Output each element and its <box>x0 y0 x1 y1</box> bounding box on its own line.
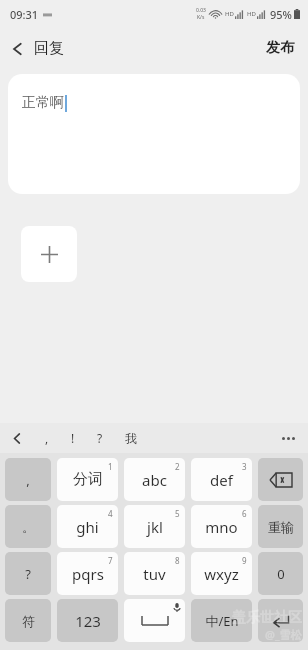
staticText: ? <box>97 430 103 446</box>
button[interactable]: 123 <box>57 599 118 642</box>
button[interactable]: 0 <box>258 552 303 595</box>
button[interactable]: Enter <box>258 599 303 642</box>
button[interactable]: 我 <box>114 426 148 451</box>
staticText: 回复 <box>34 39 64 58</box>
staticText: 8 <box>175 555 180 566</box>
button[interactable]: ? <box>5 552 51 595</box>
button[interactable]: 符 <box>5 599 51 642</box>
button[interactable]: More <box>269 429 308 448</box>
staticText: 1 <box>108 461 113 472</box>
staticText: 正常啊 <box>22 94 64 112</box>
staticText: 3 <box>242 461 247 472</box>
button[interactable]: Back <box>0 33 74 64</box>
staticText: K/s <box>197 14 205 21</box>
staticText: pqrs <box>72 564 104 584</box>
staticText: 中/En <box>205 612 239 630</box>
button[interactable]: jkl <box>124 505 185 548</box>
button[interactable]: def <box>191 458 252 501</box>
staticText: 0 <box>277 565 285 583</box>
staticText: , <box>26 471 30 489</box>
staticText: 符 <box>22 613 35 629</box>
button[interactable]: mno <box>191 505 252 548</box>
staticText: ! <box>71 430 75 446</box>
staticText: 6 <box>242 508 247 519</box>
staticText: 我 <box>125 431 137 446</box>
staticText: 发布 <box>266 39 294 57</box>
staticText: 09:31 <box>10 7 39 22</box>
staticText: 盖乐世社区 <box>232 609 302 627</box>
staticText: 95% <box>270 7 292 22</box>
staticText: def <box>210 470 233 490</box>
staticText: mno <box>205 517 238 537</box>
button[interactable]: tuv <box>124 552 185 595</box>
staticText: tuv <box>143 564 166 584</box>
button[interactable]: Collapse <box>0 426 34 451</box>
button[interactable]: wxyz <box>191 552 252 595</box>
staticText: HD <box>247 10 256 18</box>
staticText: abc <box>142 470 167 490</box>
staticText: 7 <box>108 555 113 566</box>
staticText: jkl <box>147 517 163 537</box>
staticText: 0.03 <box>196 7 206 14</box>
staticText: ghi <box>76 517 99 537</box>
button[interactable]: pqrs <box>57 552 118 595</box>
staticText: @_雪松 <box>265 627 302 642</box>
button[interactable]: 中/En <box>191 599 252 642</box>
staticText: 123 <box>75 611 101 631</box>
staticText: wxyz <box>204 564 239 584</box>
button[interactable]: Backspace <box>258 458 303 501</box>
button[interactable]: ghi <box>57 505 118 548</box>
staticText: 2 <box>175 461 180 472</box>
button[interactable]: abc <box>124 458 185 501</box>
button[interactable]: 分词 <box>57 458 118 501</box>
button[interactable]: Add image <box>21 226 77 282</box>
button[interactable]: ? <box>86 425 114 451</box>
button[interactable]: , <box>34 425 60 451</box>
button[interactable]: 发布 <box>252 31 308 65</box>
staticText: 分词 <box>73 470 103 489</box>
staticText: , <box>45 430 49 446</box>
staticText: 4 <box>108 508 113 519</box>
button[interactable]: 。 <box>5 505 51 548</box>
staticText: 9 <box>242 555 247 566</box>
button[interactable]: ! <box>60 425 86 451</box>
other: Back <box>12 41 23 57</box>
staticText: 重输 <box>268 519 294 535</box>
staticText: ? <box>25 565 31 583</box>
staticText: 。 <box>22 519 35 535</box>
button[interactable]: Space <box>124 599 185 642</box>
button[interactable]: 正常啊 <box>8 74 300 194</box>
button[interactable]: 重输 <box>258 505 303 548</box>
staticText: HD <box>225 10 234 18</box>
staticText: 5 <box>175 508 180 519</box>
button[interactable]: , <box>5 458 51 501</box>
